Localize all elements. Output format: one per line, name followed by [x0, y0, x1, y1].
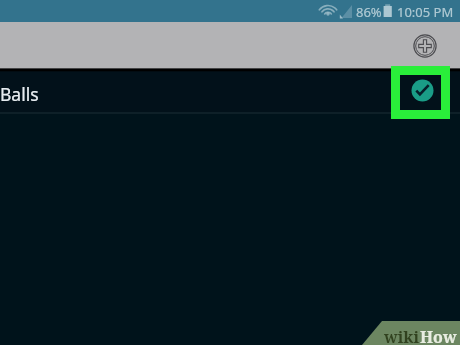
staticText: wiki [384, 326, 420, 345]
staticText: Balls [0, 82, 39, 106]
button[interactable]: Add [408, 29, 442, 63]
staticText: 86% [356, 3, 382, 21]
staticText: 10:05 PM [397, 3, 454, 21]
button[interactable]: Toggle selected [401, 69, 443, 111]
staticText: How [420, 326, 457, 345]
button[interactable]: Balls [0, 72, 460, 114]
